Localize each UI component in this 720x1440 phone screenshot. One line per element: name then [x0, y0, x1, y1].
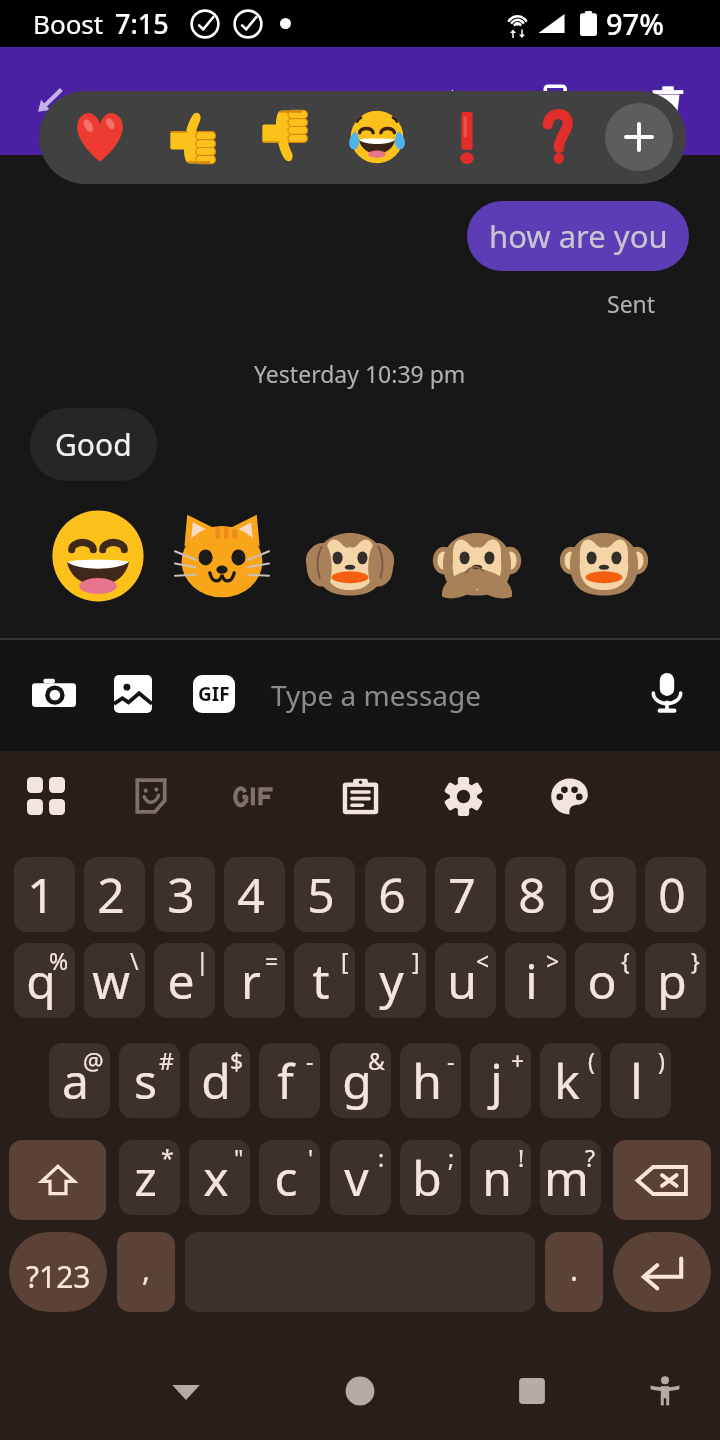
button[interactable]: 6 — [365, 857, 426, 932]
button[interactable]: GIF — [180, 660, 248, 728]
staticText: o — [587, 948, 617, 1013]
button[interactable]: Backspace — [613, 1140, 711, 1220]
button[interactable]: z — [119, 1140, 180, 1215]
button[interactable]: q — [14, 943, 75, 1018]
staticText: - — [447, 1045, 455, 1076]
button[interactable]: Clipboard — [326, 762, 394, 830]
staticText: 0 — [658, 862, 686, 927]
staticText: . — [570, 1249, 579, 1290]
button[interactable]: d — [189, 1043, 250, 1118]
button[interactable]: , — [117, 1232, 175, 1312]
staticText: \ — [130, 945, 139, 976]
button[interactable]: k — [540, 1043, 601, 1118]
button[interactable]: Shift — [9, 1140, 106, 1220]
staticText: 8 — [518, 862, 546, 927]
button[interactable]: b — [400, 1140, 461, 1215]
button[interactable]: 1 — [14, 857, 75, 932]
button[interactable]: Exclamation reaction — [433, 103, 501, 171]
button[interactable]: how are you — [467, 201, 689, 271]
staticText: ( — [588, 1045, 595, 1076]
staticText: u — [447, 948, 477, 1013]
button[interactable]: Voice message — [633, 660, 701, 728]
staticText: " — [234, 1142, 244, 1173]
button[interactable]: Camera — [20, 660, 88, 728]
button[interactable]: Heart reaction — [66, 103, 134, 171]
button[interactable]: Back — [22, 73, 78, 129]
staticText: ) — [658, 1045, 665, 1076]
button[interactable]: 3 — [154, 857, 215, 932]
button[interactable]: Question reaction — [525, 103, 593, 171]
staticText: how are you — [489, 215, 668, 257]
button[interactable]: t — [294, 943, 355, 1018]
button[interactable]: 9 — [575, 857, 636, 932]
staticText: p — [657, 948, 687, 1013]
button[interactable]: o — [575, 943, 636, 1018]
button[interactable]: p — [645, 943, 706, 1018]
button[interactable]: Laughing reaction — [343, 103, 411, 171]
button[interactable]: Type a message — [271, 638, 611, 751]
button[interactable]: Recents — [502, 1361, 562, 1421]
button[interactable]: e — [154, 943, 215, 1018]
button[interactable]: 8 — [505, 857, 566, 932]
staticText: < — [476, 945, 490, 976]
button[interactable]: s — [119, 1043, 180, 1118]
button[interactable]: More reactions — [605, 103, 673, 171]
button[interactable]: r — [224, 943, 285, 1018]
button[interactable]: Delete — [640, 73, 696, 129]
button[interactable]: ?123 — [9, 1232, 107, 1312]
staticText: n — [482, 1145, 512, 1210]
button[interactable]: i — [505, 943, 566, 1018]
button[interactable]: Settings — [429, 762, 497, 830]
staticText: } — [691, 945, 700, 976]
button[interactable]: . — [545, 1232, 603, 1312]
button[interactable]: Thumbs up reaction — [159, 103, 227, 171]
button[interactable]: w — [84, 943, 145, 1018]
button[interactable]: y — [365, 943, 426, 1018]
staticText: i — [525, 948, 538, 1013]
button[interactable]: 7 — [435, 857, 496, 932]
button[interactable]: 5 — [294, 857, 355, 932]
button[interactable]: x — [189, 1140, 250, 1215]
button[interactable]: f — [259, 1043, 320, 1118]
button[interactable]: Reply — [428, 73, 484, 129]
button[interactable]: Copy — [532, 73, 588, 129]
button[interactable]: Thumbs down reaction — [251, 103, 319, 171]
button[interactable]: Good — [30, 408, 157, 481]
button[interactable]: c — [259, 1140, 320, 1215]
staticText: 3 — [167, 862, 195, 927]
button[interactable]: v — [330, 1140, 391, 1215]
button[interactable]: Stickers — [117, 762, 185, 830]
staticText: GIF — [198, 681, 230, 707]
staticText: x — [203, 1145, 229, 1210]
staticText: y — [379, 948, 404, 1013]
button[interactable]: Gallery — [99, 660, 167, 728]
staticText: > — [546, 945, 560, 976]
button[interactable]: j — [470, 1043, 531, 1118]
button[interactable]: Enter — [613, 1232, 711, 1312]
button[interactable]: g — [330, 1043, 391, 1118]
staticText: l — [630, 1048, 643, 1113]
button[interactable]: Apps — [12, 762, 80, 830]
staticText: - — [306, 1045, 314, 1076]
button[interactable]: a — [49, 1043, 110, 1118]
button[interactable]: Accessibility — [635, 1361, 695, 1421]
button[interactable]: m — [540, 1140, 601, 1215]
button[interactable]: 4 — [224, 857, 285, 932]
button[interactable]: Home — [330, 1361, 390, 1421]
staticText: [ — [341, 945, 349, 976]
button[interactable]: 0 — [645, 857, 706, 932]
button[interactable]: 2 — [84, 857, 145, 932]
button[interactable]: GIF keyboard — [221, 762, 289, 830]
button[interactable]: n — [470, 1140, 531, 1215]
button[interactable]: h — [400, 1043, 461, 1118]
button[interactable]: l — [610, 1043, 671, 1118]
button[interactable]: u — [435, 943, 496, 1018]
staticText: % — [49, 945, 69, 976]
staticText: d — [201, 1048, 231, 1113]
staticText: 9 — [588, 862, 616, 927]
button[interactable]: Themes — [535, 762, 603, 830]
staticText: 7:15 — [115, 5, 169, 42]
button[interactable]: Back — [156, 1361, 216, 1421]
staticText: @ — [83, 1045, 104, 1076]
